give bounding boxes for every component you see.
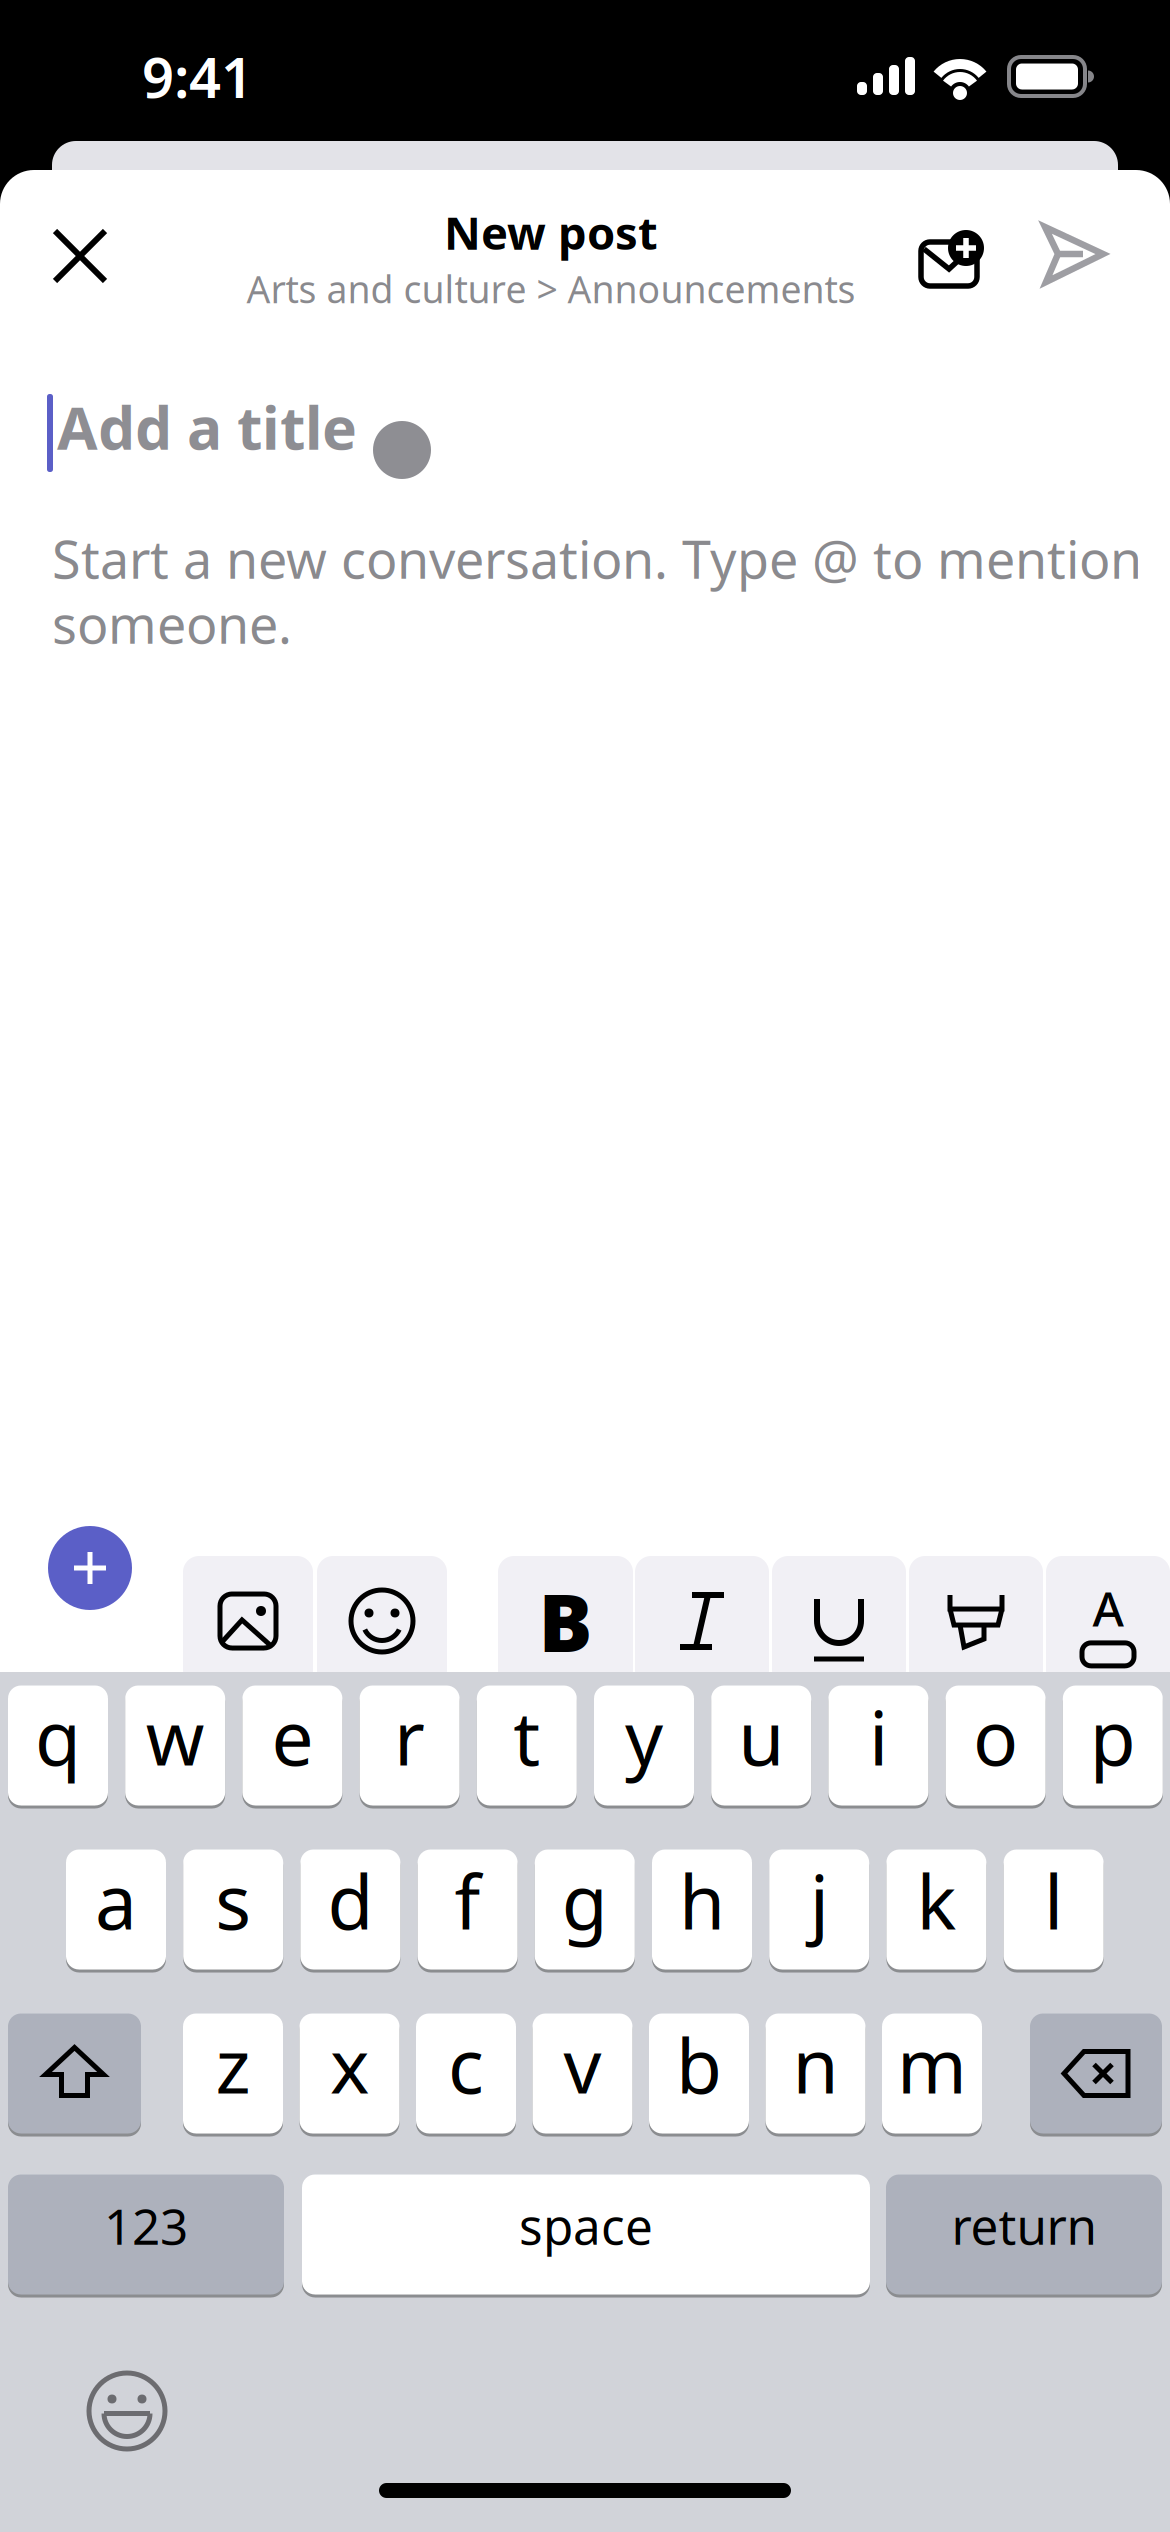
staticText: B xyxy=(538,1568,592,1674)
staticText: 9:41 xyxy=(142,39,253,113)
staticText: h xyxy=(679,1851,725,1950)
staticText: y xyxy=(625,1687,663,1786)
staticText: p xyxy=(1090,1687,1136,1786)
button[interactable]: f xyxy=(418,1848,518,1971)
button[interactable]: Post xyxy=(1045,226,1103,283)
button[interactable]: 123 xyxy=(8,2173,284,2296)
staticText: Add a title xyxy=(57,388,357,466)
staticText: t xyxy=(513,1687,540,1786)
button[interactable]: Emoji keyboard xyxy=(82,2366,172,2456)
button[interactable]: d xyxy=(300,1848,400,1971)
button[interactable]: Add attachment xyxy=(906,222,978,282)
button[interactable]: q xyxy=(8,1684,108,1807)
staticText: m xyxy=(897,2015,967,2114)
button[interactable]: Highlight xyxy=(909,1556,1043,1686)
button[interactable]: i xyxy=(828,1684,928,1807)
button[interactable]: y xyxy=(594,1684,694,1807)
staticText: o xyxy=(973,1687,1018,1786)
button[interactable]: b xyxy=(649,2012,749,2135)
button[interactable]: e xyxy=(242,1684,342,1807)
staticText: return xyxy=(951,2193,1096,2258)
button[interactable]: k xyxy=(886,1848,986,1971)
button[interactable]: Bold xyxy=(498,1556,633,1686)
staticText: q xyxy=(35,1687,81,1786)
button[interactable]: Add image xyxy=(183,1556,313,1686)
button[interactable]: l xyxy=(1004,1848,1104,1971)
button[interactable]: z xyxy=(183,2012,283,2135)
button[interactable]: a xyxy=(66,1848,166,1971)
button[interactable]: Italic xyxy=(635,1556,769,1686)
button[interactable]: u xyxy=(711,1684,811,1807)
staticText: Start a new conversation. Type @ to ment… xyxy=(52,524,1142,593)
staticText: l xyxy=(1044,1851,1063,1950)
button[interactable]: Close xyxy=(35,211,125,301)
button[interactable]: c xyxy=(416,2012,516,2135)
button[interactable]: space xyxy=(302,2173,870,2296)
button[interactable]: return xyxy=(886,2173,1162,2296)
button[interactable]: Shift xyxy=(8,2012,141,2135)
button[interactable]: Text color xyxy=(1046,1556,1170,1686)
button[interactable]: o xyxy=(946,1684,1046,1807)
staticText: g xyxy=(562,1851,608,1950)
button[interactable]: Add xyxy=(48,1526,132,1610)
staticText: f xyxy=(455,1851,481,1950)
staticText: s xyxy=(215,1851,251,1950)
button[interactable]: v xyxy=(532,2012,632,2135)
button[interactable]: j xyxy=(769,1848,869,1971)
staticText: w xyxy=(146,1687,205,1786)
button[interactable]: r xyxy=(360,1684,460,1807)
staticText: Arts and culture > Announcements xyxy=(246,264,855,314)
staticText: space xyxy=(519,2193,653,2258)
staticText: n xyxy=(792,2015,838,2114)
staticText: b xyxy=(676,2015,722,2114)
staticText: 123 xyxy=(104,2193,188,2258)
staticText: a xyxy=(95,1851,137,1950)
button[interactable]: Delete xyxy=(1030,2012,1162,2135)
button[interactable]: m xyxy=(882,2012,982,2135)
button[interactable]: Emoji xyxy=(317,1556,447,1686)
staticText: A xyxy=(1092,1576,1123,1640)
staticText: i xyxy=(869,1687,888,1786)
button[interactable]: h xyxy=(652,1848,752,1971)
button[interactable]: g xyxy=(535,1848,635,1971)
staticText: j xyxy=(810,1851,829,1950)
button[interactable]: Underline xyxy=(772,1556,906,1686)
button[interactable]: p xyxy=(1063,1684,1163,1807)
staticText: c xyxy=(448,2015,484,2114)
staticText: New post xyxy=(444,202,658,262)
staticText: z xyxy=(215,2015,250,2114)
staticText: r xyxy=(394,1687,425,1786)
staticText: someone. xyxy=(52,589,292,658)
button[interactable]: s xyxy=(183,1848,283,1971)
staticText: e xyxy=(271,1687,313,1786)
staticText: x xyxy=(330,2015,369,2114)
button[interactable]: x xyxy=(299,2012,399,2135)
button[interactable]: n xyxy=(765,2012,865,2135)
staticText: v xyxy=(563,2015,601,2114)
button[interactable]: t xyxy=(477,1684,577,1807)
button[interactable]: w xyxy=(125,1684,225,1807)
staticText: k xyxy=(916,1851,956,1950)
staticText: d xyxy=(327,1851,373,1950)
staticText: u xyxy=(738,1687,784,1786)
